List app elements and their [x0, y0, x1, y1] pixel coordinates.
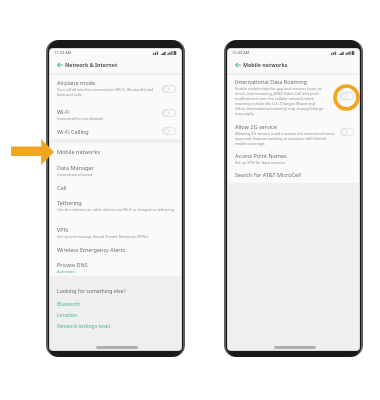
button[interactable]: Wireless Emergency Alerts [50, 242, 181, 257]
staticText: International Data Roaming [235, 78, 307, 85]
button[interactable]: Tethering [50, 195, 181, 222]
button[interactable]: Private DNS [50, 257, 181, 276]
button[interactable]: Wi-Fi [50, 102, 181, 123]
button[interactable]: Network settings reset [57, 323, 111, 330]
staticText: Private DNS [57, 261, 88, 268]
staticText: 11:20 AM [54, 50, 72, 55]
staticText: VPN [57, 226, 68, 233]
button[interactable]: Toggle International Data Roaming [340, 92, 354, 100]
staticText: Set up VPN for data services [235, 160, 286, 165]
button[interactable]: Mobile networks [50, 143, 181, 160]
button[interactable]: Allow 2G service [228, 119, 359, 148]
button[interactable]: Access Point Names [228, 148, 359, 167]
staticText: Tethering [57, 199, 82, 206]
button[interactable]: Wi-Fi Calling [50, 123, 181, 139]
staticText: Data Manager [57, 164, 94, 171]
button[interactable]: International Data Roaming [228, 75, 359, 119]
button[interactable]: Toggle Airplane mode [162, 85, 176, 93]
staticText: Set up and manage Virtual Private Networ… [57, 234, 149, 239]
staticText: Access Point Names [235, 152, 287, 159]
staticText: 10:40 AM [232, 50, 250, 55]
staticText: Wi-Fi [57, 108, 70, 115]
staticText: Call [57, 184, 67, 191]
staticText: Bluetooth [57, 301, 81, 308]
staticText: Location [57, 312, 78, 319]
button[interactable]: Back [55, 60, 64, 69]
staticText: Search for AT&T MicroCell [235, 171, 301, 178]
staticText: Network settings reset [57, 323, 111, 330]
button[interactable]: Toggle Allow 2G service [340, 128, 354, 136]
staticText: Mobile networks [57, 148, 101, 155]
button[interactable]: Back [233, 60, 242, 69]
button[interactable]: Bluetooth [57, 301, 81, 308]
button[interactable]: Location [57, 312, 78, 319]
staticText: Allow 2G service [235, 123, 277, 130]
staticText: Connected to not allowed [57, 116, 103, 121]
staticText: Turn off all wireless connections (Wi-Fi… [57, 87, 159, 97]
button[interactable]: Back [228, 56, 359, 73]
staticText: Mobile networks [243, 61, 288, 68]
button[interactable]: Search for AT&T MicroCell [228, 167, 359, 183]
button[interactable]: Data Manager [50, 160, 181, 180]
staticText: Allowing 2G service could increase the m… [235, 131, 337, 146]
button[interactable]: Back [50, 56, 181, 73]
button[interactable]: VPN [50, 222, 181, 242]
staticText: Wi-Fi Calling [57, 128, 89, 135]
staticText: Network & Internet [65, 61, 118, 68]
staticText: Airplane mode [57, 79, 95, 86]
staticText: Looking for something else? [57, 287, 126, 294]
staticText: Use the internet on other devices via Wi… [57, 207, 175, 212]
button[interactable]: Toggle Wi-Fi [162, 109, 176, 117]
staticText: Connection allowed [57, 172, 93, 177]
button[interactable]: Toggle Wi-Fi Calling [162, 127, 176, 135]
staticText: Wireless Emergency Alerts [57, 246, 126, 253]
button[interactable]: Call [50, 180, 181, 195]
staticText: Automatic [57, 269, 76, 274]
staticText: Enable mobile data for app and services … [235, 86, 325, 116]
button[interactable]: Airplane mode [50, 75, 181, 102]
